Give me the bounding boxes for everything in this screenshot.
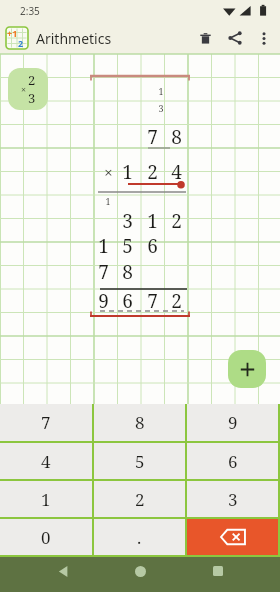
staticText: 4	[41, 450, 51, 473]
staticText: 2	[147, 159, 158, 185]
button[interactable]: 1	[0, 481, 92, 517]
staticText: 2	[18, 37, 24, 49]
staticText: 7	[41, 411, 51, 434]
staticText: 3	[122, 208, 133, 234]
button[interactable]: 6	[187, 443, 278, 479]
button[interactable]: 4	[0, 443, 92, 479]
staticText: Arithmetics	[36, 29, 112, 48]
staticText: 3	[28, 89, 36, 107]
button[interactable]: 3	[187, 481, 278, 517]
staticText: 1	[105, 195, 111, 207]
staticText: 4	[171, 159, 182, 185]
staticText: 5	[122, 233, 133, 259]
staticText: 2	[135, 488, 145, 511]
staticText: 8	[122, 259, 133, 285]
staticText: 8	[171, 124, 182, 150]
staticText: 1	[147, 208, 158, 234]
staticText: 6	[122, 288, 133, 314]
staticText: 3	[228, 488, 238, 511]
staticText: 1	[98, 233, 109, 259]
button[interactable]: Share	[220, 23, 250, 53]
button[interactable]: 0	[0, 519, 92, 555]
staticText: 7	[147, 124, 158, 150]
button[interactable]: Delete	[190, 23, 220, 53]
staticText: 9	[98, 288, 109, 314]
staticText: 5	[135, 450, 145, 473]
button[interactable]: 9	[187, 404, 278, 441]
staticText: 9	[228, 411, 238, 434]
staticText: 2	[171, 208, 182, 234]
staticText: 6	[147, 233, 158, 259]
button[interactable]: Back	[48, 556, 78, 586]
staticText: 6	[228, 450, 238, 473]
button[interactable]: Add	[228, 350, 266, 388]
staticText: 2	[171, 288, 182, 314]
button[interactable]: Home	[125, 556, 155, 586]
button[interactable]: 7	[0, 404, 92, 441]
button[interactable]: Recent apps	[203, 556, 233, 586]
staticText: 8	[135, 411, 145, 434]
staticText: 2:35	[20, 4, 40, 18]
button[interactable]: 2	[94, 481, 185, 517]
staticText: 7	[147, 288, 158, 314]
staticText: ×	[21, 83, 27, 95]
button[interactable]: 5	[94, 443, 185, 479]
button[interactable]: App icon	[6, 27, 28, 49]
button[interactable]: .	[94, 519, 185, 555]
button[interactable]: Backspace	[187, 519, 278, 555]
button[interactable]: 8	[94, 404, 185, 441]
staticText: 0	[41, 526, 51, 549]
staticText: 3	[158, 102, 164, 114]
staticText: 1	[122, 159, 133, 185]
button[interactable]: ×	[8, 68, 48, 110]
staticText: ×	[104, 162, 113, 182]
staticText: +1	[7, 27, 18, 39]
staticText: 1	[41, 488, 51, 511]
button[interactable]: More options	[250, 24, 278, 52]
staticText: 2	[28, 71, 36, 89]
staticText: .	[137, 526, 142, 549]
staticText: 1	[158, 85, 164, 97]
staticText: 7	[98, 259, 109, 285]
